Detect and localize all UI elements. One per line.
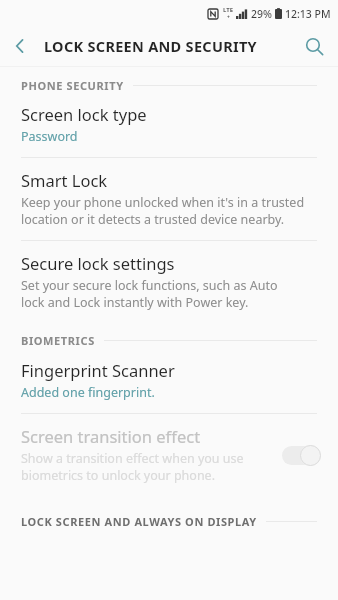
staticText: LTE (223, 6, 234, 14)
staticText: Screen lock type (21, 103, 147, 125)
staticText: Smart Lock (21, 169, 108, 191)
staticText: Show a transition effect when you use bi… (21, 450, 244, 484)
staticText: Secure lock settings (21, 252, 175, 274)
staticText: LOCK SCREEN AND SECURITY (44, 36, 257, 56)
button[interactable]: Screen lock type (0, 103, 338, 145)
staticText: Added one fingerprint. (21, 384, 155, 401)
staticText: 12:13 PM (285, 7, 331, 21)
button[interactable]: Back (0, 26, 40, 66)
button[interactable]: Smart Lock (0, 169, 338, 228)
staticText: Password (21, 128, 78, 145)
button[interactable]: Screen transition effect (0, 425, 338, 484)
staticText: BIOMETRICS (21, 333, 95, 348)
staticText: Screen transition effect (21, 425, 201, 447)
button[interactable]: Search (294, 26, 334, 66)
staticText: PHONE SECURITY (21, 78, 124, 93)
button[interactable]: Fingerprint Scanner (0, 359, 338, 401)
staticText: LOCK SCREEN AND ALWAYS ON DISPLAY (21, 514, 257, 529)
staticText: + (227, 14, 230, 21)
staticText: Keep your phone unlocked when it's in a … (21, 194, 305, 228)
staticText: Set your secure lock functions, such as … (21, 277, 278, 311)
staticText: Fingerprint Scanner (21, 359, 175, 381)
button[interactable]: Secure lock settings (0, 252, 338, 311)
staticText: 29% (251, 7, 272, 21)
